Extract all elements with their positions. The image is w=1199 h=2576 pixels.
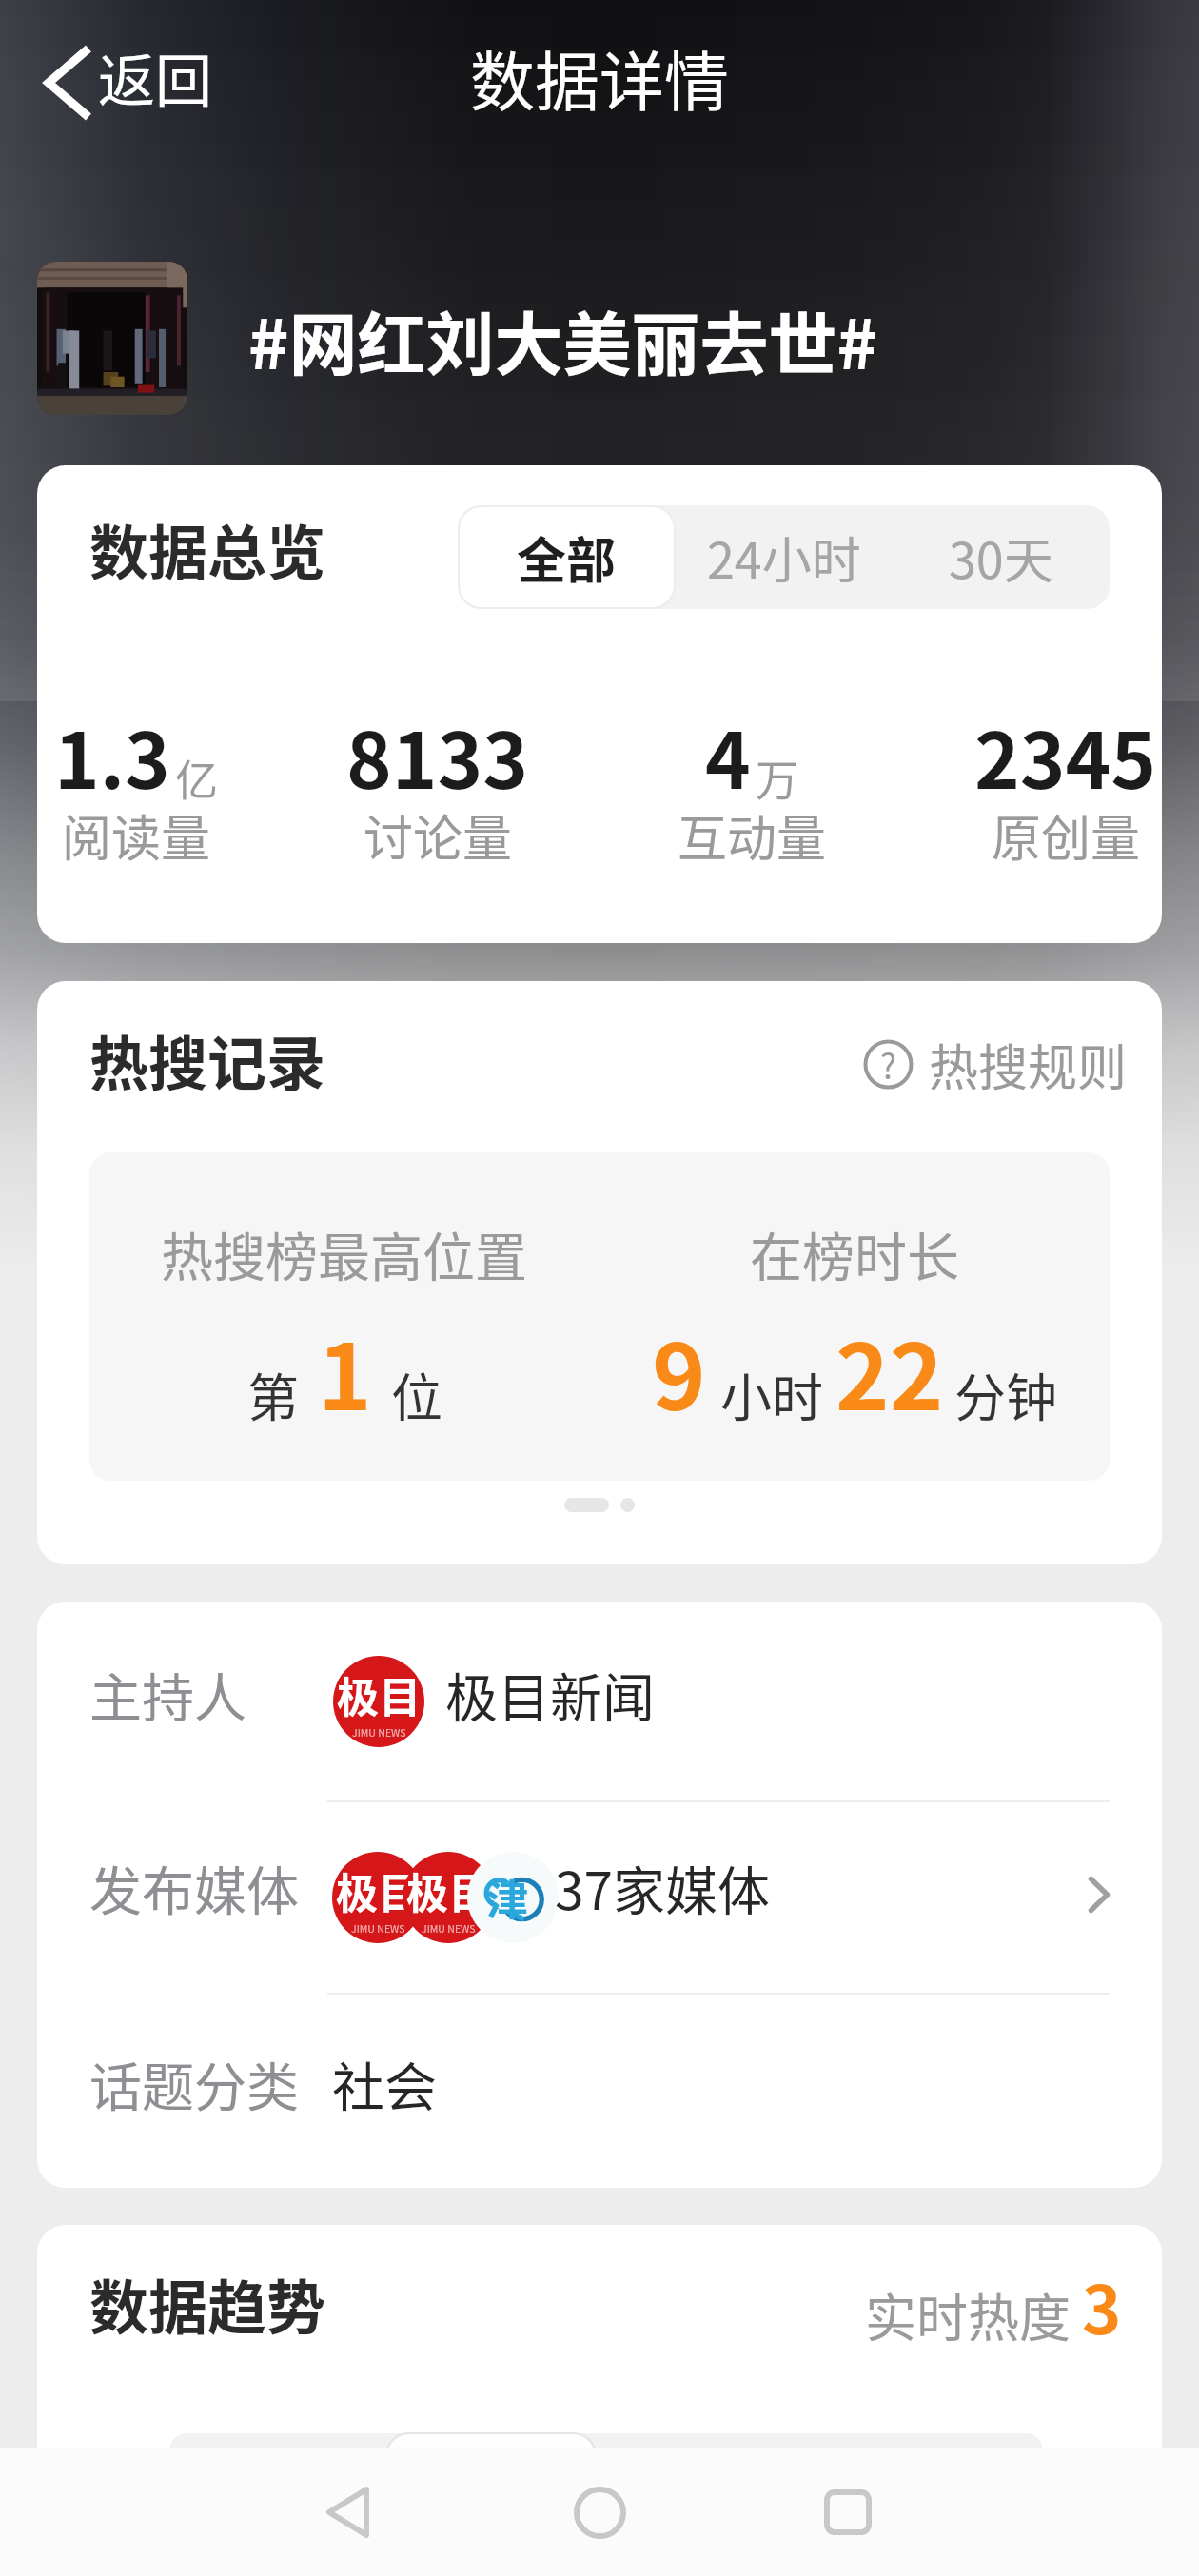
staticText: 小时	[720, 1357, 823, 1431]
staticText: JIMU NEWS	[352, 1725, 406, 1740]
staticText: 原创量	[992, 799, 1141, 871]
staticText: 发布媒体	[89, 1849, 300, 1925]
staticText: 1.3	[54, 699, 170, 811]
button[interactable]: Back	[290, 2448, 404, 2576]
button[interactable]: 24小时	[676, 505, 893, 609]
staticText: 22	[835, 1305, 944, 1437]
staticText: 热搜榜最高位置	[161, 1215, 528, 1291]
staticText: ?	[880, 1039, 897, 1089]
staticText: 数据详情	[470, 30, 730, 124]
staticText: 极目	[336, 1860, 421, 1921]
staticText: 位	[391, 1357, 442, 1431]
staticText: 30天	[949, 521, 1053, 593]
staticText: 津	[486, 1867, 529, 1928]
staticText: 亿	[175, 747, 219, 809]
staticText: 数据趋势	[89, 2261, 326, 2347]
staticText: 社会	[332, 2045, 438, 2121]
staticText: 第	[247, 1357, 299, 1431]
staticText: 数据总览	[89, 506, 326, 592]
staticText: 37家媒体	[555, 1849, 771, 1925]
staticText: 阅读量	[62, 799, 211, 871]
staticText: 极目新闻	[445, 1656, 656, 1732]
staticText: 极目	[337, 1664, 422, 1725]
button[interactable]: 30天	[893, 505, 1110, 609]
staticText: 3	[1082, 2257, 1122, 2353]
staticText: JIMU NEWS	[351, 1921, 405, 1936]
staticText: 2345	[974, 699, 1157, 811]
staticText: 万	[756, 747, 799, 809]
staticText: 热搜记录	[89, 1017, 326, 1103]
staticText: 实时热度	[865, 2277, 1071, 2351]
button[interactable]: ?	[857, 1023, 1133, 1106]
staticText: #网红刘大美丽去世#	[248, 289, 877, 388]
staticText: 分钟	[954, 1357, 1057, 1431]
staticText: 在榜时长	[750, 1215, 960, 1291]
staticText: 热搜规则	[929, 1029, 1128, 1100]
staticText: 极目	[406, 1860, 491, 1921]
staticText: 4	[705, 699, 751, 811]
staticText: 讨论量	[364, 799, 513, 871]
staticText: 互动量	[678, 799, 827, 871]
staticText: 9	[652, 1305, 706, 1437]
button[interactable]: 发布媒体	[37, 1802, 1162, 1993]
staticText: JIMU NEWS	[422, 1921, 476, 1936]
button[interactable]: 全部	[460, 507, 674, 607]
staticText: 主持人	[89, 1656, 247, 1732]
staticText: 话题分类	[89, 2045, 300, 2121]
staticText: 全部	[517, 521, 617, 593]
staticText: 1	[318, 1305, 372, 1437]
button[interactable]: Home	[542, 2448, 657, 2576]
staticText: 返回	[98, 35, 212, 118]
button[interactable]: Recent apps	[791, 2448, 905, 2576]
staticText: 24小时	[707, 521, 861, 593]
staticText: 8133	[346, 699, 529, 811]
button[interactable]: 返回	[26, 24, 226, 129]
